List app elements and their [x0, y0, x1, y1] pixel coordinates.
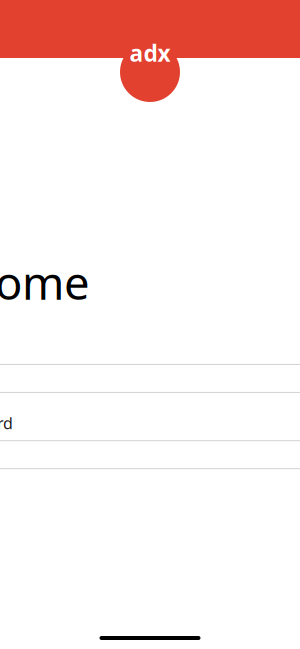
staticText: adx: [129, 38, 170, 68]
staticText: Enter password: [0, 412, 13, 434]
staticText: Welcome: [0, 252, 90, 312]
